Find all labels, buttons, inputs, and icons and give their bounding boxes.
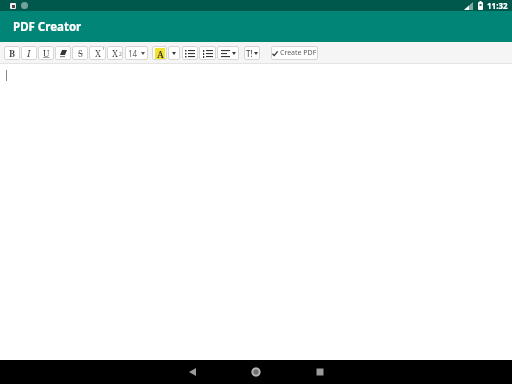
- button[interactable]: U: [38, 46, 54, 60]
- staticText: PDF Creator: [13, 19, 82, 35]
- staticText: 14: [128, 48, 138, 59]
- button[interactable]: B: [4, 46, 20, 60]
- button[interactable]: [236, 360, 276, 384]
- button[interactable]: T!: [244, 46, 260, 60]
- button[interactable]: [217, 46, 239, 60]
- staticText: 11:32: [487, 0, 508, 11]
- button[interactable]: X: [107, 46, 123, 60]
- button[interactable]: S: [72, 46, 88, 60]
- button[interactable]: [199, 46, 216, 60]
- staticText: X: [95, 47, 101, 59]
- staticText: A: [157, 48, 164, 59]
- button[interactable]: A: [152, 46, 167, 60]
- button[interactable]: [168, 46, 180, 60]
- button[interactable]: I: [21, 46, 37, 60]
- button[interactable]: [172, 360, 212, 384]
- button[interactable]: [182, 46, 198, 60]
- staticText: I: [27, 47, 31, 59]
- staticText: B: [9, 47, 16, 59]
- staticText: 2: [119, 51, 122, 58]
- staticText: Create PDF: [280, 48, 317, 58]
- button[interactable]: Create PDF: [271, 46, 318, 60]
- button[interactable]: 14: [125, 46, 148, 60]
- button[interactable]: X: [89, 46, 106, 60]
- staticText: S: [78, 47, 83, 59]
- button[interactable]: [55, 46, 71, 60]
- staticText: T!: [246, 48, 253, 59]
- button[interactable]: [300, 360, 340, 384]
- staticText: U: [43, 47, 50, 59]
- staticText: X: [112, 47, 118, 59]
- staticText: 1: [102, 45, 105, 52]
